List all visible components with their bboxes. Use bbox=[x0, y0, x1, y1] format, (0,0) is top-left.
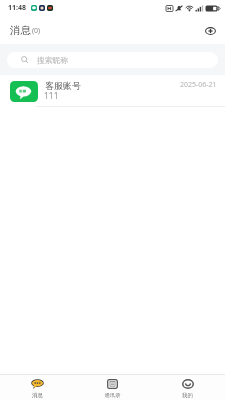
staticText: 消息 bbox=[10, 24, 31, 37]
staticText: 通讯录 bbox=[104, 392, 121, 399]
staticText: 111 bbox=[44, 90, 59, 102]
staticText: 2025-06-21 bbox=[180, 80, 217, 90]
button[interactable]: 搜索昵称 bbox=[7, 52, 218, 68]
staticText: 搜索昵称 bbox=[37, 55, 69, 65]
staticText: 11:48 bbox=[8, 3, 26, 13]
button[interactable]: 通讯录 bbox=[75, 375, 150, 400]
staticText: (0) bbox=[32, 26, 41, 36]
button[interactable]: 消息 bbox=[0, 375, 75, 400]
button[interactable]: 客服账号 bbox=[0, 75, 225, 107]
button[interactable]: Add bbox=[200, 21, 220, 41]
staticText: 消息 bbox=[32, 392, 43, 399]
button[interactable]: 我的 bbox=[150, 375, 225, 400]
staticText: 客服账号 bbox=[45, 80, 81, 91]
staticText: 我的 bbox=[182, 392, 193, 399]
